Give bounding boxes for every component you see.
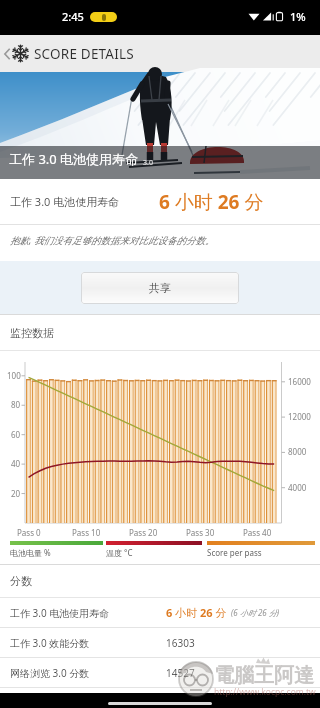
staticText: Pass 0 (17, 527, 41, 538)
button[interactable]: 工作 3.0 效能分数 (0, 628, 320, 657)
staticText: http://www.kocpc.com.tw (214, 686, 316, 698)
button[interactable]: 共享 (81, 272, 239, 304)
staticText: 電腦王阿達 (214, 663, 314, 688)
staticText: 2:45 (62, 9, 84, 24)
staticText: 网络浏览 3.0 分数 (10, 666, 166, 680)
staticText: 12000 (288, 411, 311, 422)
staticText: 80 (11, 399, 21, 410)
button[interactable]: 网络浏览 3.0 分数 (0, 658, 320, 687)
staticText: (6 小时 26 分) (231, 607, 280, 618)
staticText: 监控数据 (10, 326, 54, 340)
staticText: Pass 10 (72, 527, 101, 538)
staticText: 共享 (149, 281, 171, 295)
staticText: 电池电量 % (10, 547, 51, 558)
staticText: Pass 40 (243, 527, 272, 538)
staticText: 分数 (10, 574, 32, 588)
staticText: 6 小时 26 分 (166, 605, 227, 620)
button[interactable]: Back (0, 35, 134, 72)
staticText: 3.0 (143, 158, 153, 168)
staticText: Score per pass (207, 547, 262, 558)
staticText: 100 (7, 370, 21, 381)
staticText: 温度 °C (106, 547, 133, 558)
staticText: 工作 3.0 电池使用寿命 (10, 194, 120, 209)
button[interactable]: 工作 3.0 电池使用寿命 (0, 598, 320, 627)
staticText: 4000 (288, 482, 307, 493)
staticText: SCORE DETAILS (34, 45, 134, 63)
staticText: 抱歉, 我们没有足够的数据来对比此设备的分数。 (10, 234, 215, 247)
staticText: Pass 20 (129, 527, 158, 538)
staticText: 16000 (288, 376, 311, 387)
staticText: 6 小时 26 分 (159, 189, 264, 215)
staticText: 工作 3.0 效能分数 (10, 636, 166, 650)
staticText: 工作 3.0 电池使用寿命 (10, 606, 166, 620)
staticText: 60 (11, 429, 21, 440)
staticText: 20 (11, 488, 21, 499)
other: Back (4, 48, 10, 60)
staticText: 1% (290, 9, 306, 24)
staticText: 工作 3.0 电池使用寿命 (9, 150, 139, 168)
staticText: 16303 (166, 636, 195, 650)
staticText: Pass 30 (186, 527, 215, 538)
staticText: 40 (11, 458, 21, 469)
staticText: 8000 (288, 446, 307, 457)
staticText: 14527 (166, 666, 195, 680)
